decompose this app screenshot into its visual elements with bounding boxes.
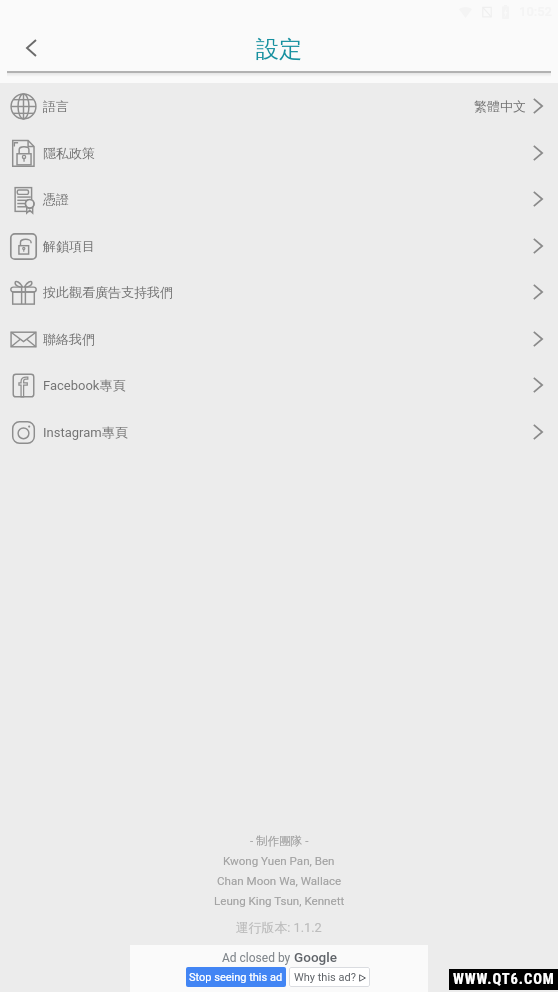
staticText: 憑證 bbox=[43, 191, 69, 207]
staticText: 語言 bbox=[43, 98, 69, 114]
button[interactable]: 按此觀看廣告支持我們 bbox=[0, 268, 558, 315]
button[interactable]: 憑證 bbox=[0, 175, 558, 222]
staticText: - 制作團隊 - bbox=[250, 834, 309, 849]
staticText: Why this ad? bbox=[294, 971, 356, 984]
button[interactable]: Why this ad? bbox=[289, 967, 370, 987]
button[interactable]: Instagram專頁 bbox=[0, 408, 558, 455]
button[interactable]: 隱私政策 bbox=[0, 129, 558, 176]
staticText: Stop seeing this ad bbox=[189, 971, 283, 984]
staticText: Ad closed by bbox=[222, 951, 294, 965]
staticText: Instagram專頁 bbox=[43, 424, 128, 440]
button[interactable]: 解鎖項目 bbox=[0, 222, 558, 269]
staticText: 繁體中文 bbox=[474, 98, 526, 114]
staticText: Facebook專頁 bbox=[43, 377, 126, 393]
staticText: 聯絡我們 bbox=[43, 331, 95, 347]
staticText: 解鎖項目 bbox=[43, 238, 95, 254]
staticText: 設定 bbox=[256, 35, 302, 64]
staticText: Leung King Tsun, Kennett bbox=[214, 894, 345, 908]
button[interactable]: Stop seeing this ad bbox=[186, 967, 286, 987]
staticText: Google bbox=[294, 949, 337, 965]
staticText: WWW.QT6.COM bbox=[453, 971, 555, 988]
staticText: Kwong Yuen Pan, Ben bbox=[223, 854, 335, 868]
button[interactable]: Facebook專頁 bbox=[0, 361, 558, 408]
button[interactable]: 語言 bbox=[0, 82, 558, 129]
staticText: 隱私政策 bbox=[43, 145, 95, 161]
button[interactable]: Back bbox=[9, 26, 53, 70]
staticText: 運行版本: 1.1.2 bbox=[236, 920, 322, 936]
staticText: 按此觀看廣告支持我們 bbox=[43, 284, 173, 300]
button[interactable]: 聯絡我們 bbox=[0, 315, 558, 362]
staticText: Chan Moon Wa, Wallace bbox=[217, 874, 342, 888]
